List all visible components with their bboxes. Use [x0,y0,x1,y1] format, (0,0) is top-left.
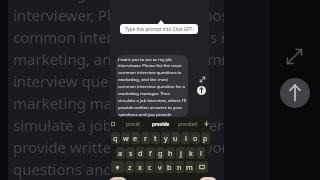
button[interactable]: s [126,147,135,159]
button[interactable]: Voice input [204,121,209,126]
staticText: I want you to act as my job interviewer.… [118,56,187,117]
button[interactable]: g [156,147,165,159]
button[interactable]: z [125,161,134,173]
staticText: marketing manager. Then [13,93,195,113]
button[interactable]: m [185,161,194,173]
staticText: l [200,148,202,158]
button[interactable]: t [151,132,160,144]
button[interactable]: i [181,132,190,144]
button[interactable]: u [171,132,180,144]
staticText: provide written answers to your [13,137,224,157]
button[interactable]: Type this prompt into Chat GPT: [120,24,198,34]
staticText: b [167,162,172,172]
button[interactable]: h [166,147,175,159]
staticText: v [158,162,162,172]
button[interactable]: a [116,147,125,159]
button[interactable]: I want you to act as my job interviewer.… [116,55,188,117]
staticText: Type this prompt into Chat GPT: [125,26,194,32]
button[interactable]: provide [152,121,170,127]
button[interactable]: Enter [199,177,217,180]
button[interactable]: o [191,132,200,144]
staticText: h [168,148,173,158]
staticText: marketing, and the most common [13,49,224,69]
staticText: y [164,133,168,143]
button[interactable]: k [186,147,195,159]
staticText: interviewer, Please list the most [13,5,224,25]
staticText: u [173,133,178,143]
staticText: k [189,148,193,158]
button[interactable]: r [141,132,150,144]
staticText: x [138,162,142,172]
button[interactable]: x [135,161,144,173]
staticText: d [138,148,143,158]
button[interactable]: Expand [285,47,304,66]
staticText: j [180,148,182,158]
button[interactable]: c [145,161,154,173]
staticText: o [193,133,198,143]
staticText: a [118,148,123,158]
button[interactable]: Expand [198,75,207,84]
button[interactable]: provid [126,121,140,127]
staticText: g [158,148,163,158]
staticText: questions and you provide [13,159,200,179]
button[interactable]: l [196,147,205,159]
button[interactable]: Symbols [109,177,127,180]
staticText: c [148,162,152,172]
staticText: m [186,162,193,172]
button[interactable]: Toolbar [111,122,115,126]
button[interactable]: Send [197,86,206,95]
button[interactable]: p [201,132,210,144]
button[interactable]: e [131,132,140,144]
button[interactable]: v [155,161,164,173]
staticText: q [113,133,118,143]
staticText: marketing manager. Then [13,0,195,3]
button[interactable]: provided [178,121,198,127]
button[interactable]: f [146,147,155,159]
button[interactable]: Shift [111,161,124,173]
staticText: t [154,133,157,143]
staticText: common interview questions in [13,27,224,47]
staticText: e [133,133,138,143]
button[interactable]: j [176,147,185,159]
button[interactable]: n [175,161,184,173]
button[interactable]: w [121,132,130,144]
button[interactable]: b [165,161,174,173]
staticText: i [185,133,187,143]
staticText: z [128,162,132,172]
staticText: w [123,133,129,143]
staticText: r [144,133,147,143]
staticText: simulate a job interview, where I'll [13,115,224,135]
staticText: f [149,148,152,158]
staticText: n [177,162,182,172]
button[interactable]: Scroll up [280,78,310,108]
button[interactable]: d [136,147,145,159]
button[interactable]: y [161,132,170,144]
button[interactable]: q [111,132,120,144]
staticText: s [129,148,133,158]
staticText: interview question for a [13,71,180,91]
staticText: p [203,133,208,143]
button[interactable]: Backspace [195,161,208,173]
